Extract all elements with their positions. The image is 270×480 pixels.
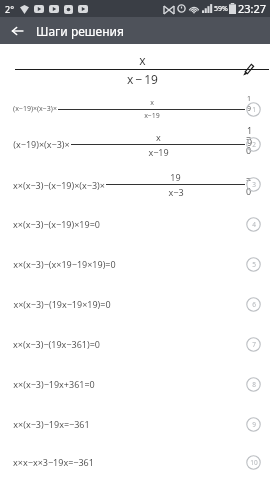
button[interactable]: (x−19)×(x−3)×	[0, 124, 270, 164]
staticText: 4	[252, 220, 256, 229]
button[interactable]: x×(x−3)−19x=−361	[0, 404, 270, 444]
staticText: 10	[250, 458, 258, 467]
staticText: 2	[252, 140, 256, 149]
staticText: x−19	[148, 146, 169, 158]
staticText: 6	[252, 300, 256, 309]
staticText: x×(x−3)−(x×19−19×19)=0	[13, 258, 116, 270]
staticText: x×(x−3)−(19x−19×19)=0	[13, 298, 111, 310]
staticText: x	[139, 52, 146, 68]
staticText: 1	[252, 105, 256, 114]
staticText: 5	[252, 260, 256, 269]
staticText: x×(x−3)−19x+361=0	[13, 378, 95, 390]
staticText: 2°	[5, 3, 15, 15]
button[interactable]: x×(x−3)−(x×19−19×19)=0	[0, 244, 270, 284]
staticText: 9	[252, 420, 256, 429]
staticText: 8	[252, 380, 256, 389]
staticText: 59%	[214, 4, 228, 14]
staticText: x×(x−3)−(x−19)×19=0	[13, 218, 100, 230]
staticText: x	[150, 98, 154, 108]
staticText: 19	[170, 171, 181, 183]
button[interactable]: x×(x−3)−(x−19)×(x−3)×	[0, 164, 270, 204]
staticText: x×x−x×3−19x=−361	[13, 456, 94, 468]
staticText: x	[156, 131, 161, 143]
staticText: x×(x−3)−(19x−361)=0	[13, 338, 100, 350]
staticText: x×(x−3)−19x=−361	[13, 418, 90, 430]
staticText: x×(x−3)−(x−19)×(x−3)×	[13, 179, 105, 191]
staticText: 3	[252, 180, 256, 189]
button[interactable]: x×(x−3)−(19x−19×19)=0	[0, 284, 270, 324]
button[interactable]: x×(x−3)−(19x−361)=0	[0, 324, 270, 364]
button[interactable]: Edit equation	[235, 56, 261, 82]
button[interactable]: Back	[7, 21, 27, 41]
staticText: x−3	[168, 186, 184, 198]
staticText: x−19	[144, 111, 160, 121]
button[interactable]: x×x−x×3−19x=−361	[0, 444, 270, 480]
button[interactable]: x×(x−3)−19x+361=0	[0, 364, 270, 404]
staticText: (x−19)×(x−3)×	[13, 138, 70, 150]
staticText: Шаги решения	[36, 23, 124, 39]
button[interactable]: x×(x−3)−(x−19)×19=0	[0, 204, 270, 244]
staticText: (x−19)×(x−3)×	[13, 104, 57, 114]
staticText: 23:27	[238, 1, 267, 16]
button[interactable]: (x−19)×(x−3)×	[0, 94, 270, 124]
staticText: x − 19	[127, 71, 158, 87]
staticText: 7	[252, 340, 256, 349]
